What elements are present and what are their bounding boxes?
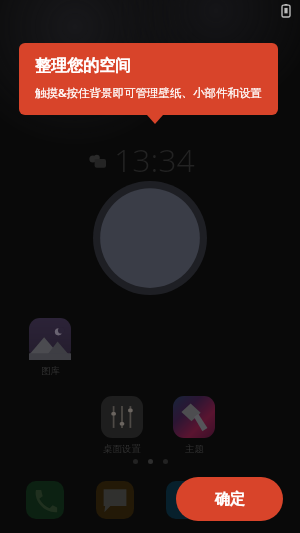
button[interactable]: Camera [236, 481, 274, 519]
button[interactable]: Home settings [94, 396, 150, 455]
staticText: 触摸&按住背景即可管理壁纸、小部件和设置 [35, 85, 262, 101]
staticText: 确定 [215, 490, 245, 509]
button[interactable]: 确定 [176, 477, 283, 521]
button[interactable]: Clock widget [93, 181, 207, 295]
staticText: 主题 [185, 443, 204, 455]
button[interactable]: Messages [96, 481, 134, 519]
button[interactable]: Gallery [22, 318, 78, 377]
button[interactable]: 整理您的空间 [19, 43, 278, 115]
button[interactable]: Themes [166, 396, 222, 455]
staticText: 图库 [41, 365, 60, 377]
staticText: 整理您的空间 [35, 56, 131, 76]
button[interactable]: Browser [166, 481, 204, 519]
button[interactable]: Phone [26, 481, 64, 519]
staticText: 桌面设置 [103, 443, 141, 455]
staticText: 13:34 [114, 138, 195, 182]
other: Battery [282, 4, 290, 17]
